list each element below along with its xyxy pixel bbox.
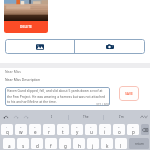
button[interactable]: Choose from gallery	[5, 39, 74, 54]
staticText: h	[78, 143, 81, 149]
button[interactable]: s	[17, 138, 29, 149]
staticText: SAVE	[125, 91, 133, 96]
button[interactable]: DELETE	[4, 21, 48, 33]
staticText: p	[132, 129, 135, 135]
button[interactable]: f	[45, 138, 57, 149]
staticText: The	[83, 115, 89, 119]
button[interactable]: 3	[29, 124, 41, 135]
button[interactable]: Haven Gund slipped, fell, and slid about…	[5, 87, 110, 106]
staticText: 0	[132, 125, 134, 128]
staticText: w	[19, 129, 23, 135]
staticText: o	[118, 129, 121, 135]
button[interactable]: More options	[140, 113, 148, 121]
button[interactable]: Undo	[3, 114, 9, 120]
staticText: Haven Gund slipped, fell, and slid about…	[7, 89, 108, 104]
button[interactable]: 2	[15, 124, 27, 135]
staticText: 6	[76, 125, 78, 128]
staticText: t	[62, 129, 64, 135]
button[interactable]: l	[115, 138, 127, 149]
staticText: j	[92, 143, 94, 149]
staticText: y	[76, 129, 79, 135]
button[interactable]: SAVE	[119, 86, 139, 101]
staticText: 9	[118, 125, 120, 128]
button[interactable]: h	[73, 138, 85, 149]
staticText: 4	[48, 125, 50, 128]
staticText: k	[106, 143, 109, 149]
button[interactable]: k	[101, 138, 113, 149]
staticText: 321 / 500	[93, 103, 109, 107]
staticText: 5	[62, 125, 64, 128]
button[interactable]: Paste	[23, 114, 29, 120]
staticText: s	[22, 143, 25, 149]
staticText: f	[50, 143, 52, 149]
staticText: i	[104, 129, 106, 135]
button[interactable]: return	[129, 138, 149, 149]
button[interactable]: 5	[57, 124, 69, 135]
staticText: g	[64, 143, 67, 149]
button[interactable]: Redo	[13, 114, 19, 120]
button[interactable]: j	[87, 138, 99, 149]
staticText: 1	[6, 125, 8, 128]
staticText: l	[120, 143, 122, 149]
staticText: Near Miss Description	[5, 77, 40, 82]
staticText: 2	[20, 125, 22, 128]
button[interactable]: 8	[99, 124, 111, 135]
staticText: I'm	[119, 115, 124, 119]
button[interactable]: 4	[43, 124, 55, 135]
staticText: 8	[104, 125, 106, 128]
staticText: 3	[34, 125, 36, 128]
button[interactable]: 6	[71, 124, 83, 135]
staticText: e	[34, 129, 37, 135]
button[interactable]: 0	[127, 124, 139, 135]
staticText: r	[48, 129, 50, 135]
button[interactable]: d	[31, 138, 43, 149]
staticText: 7	[90, 125, 92, 128]
staticText: DELETE	[20, 25, 33, 29]
button[interactable]: 7	[85, 124, 97, 135]
button[interactable]: The	[69, 110, 103, 124]
button[interactable]: I	[35, 110, 68, 124]
staticText: q	[6, 129, 9, 135]
button[interactable]: g	[59, 138, 71, 149]
staticText: return	[135, 142, 144, 146]
button[interactable]: Take photo	[75, 39, 145, 54]
button[interactable]: a	[3, 138, 15, 149]
staticText: d	[36, 143, 39, 149]
staticText: Near Miss	[5, 69, 21, 74]
button[interactable]: 1	[1, 124, 13, 135]
button[interactable]: Backspace	[141, 124, 149, 135]
staticText: a	[8, 143, 11, 149]
staticText: I	[51, 115, 53, 119]
button[interactable]: I'm	[104, 110, 138, 124]
staticText: u	[90, 129, 93, 135]
button[interactable]: 9	[113, 124, 125, 135]
